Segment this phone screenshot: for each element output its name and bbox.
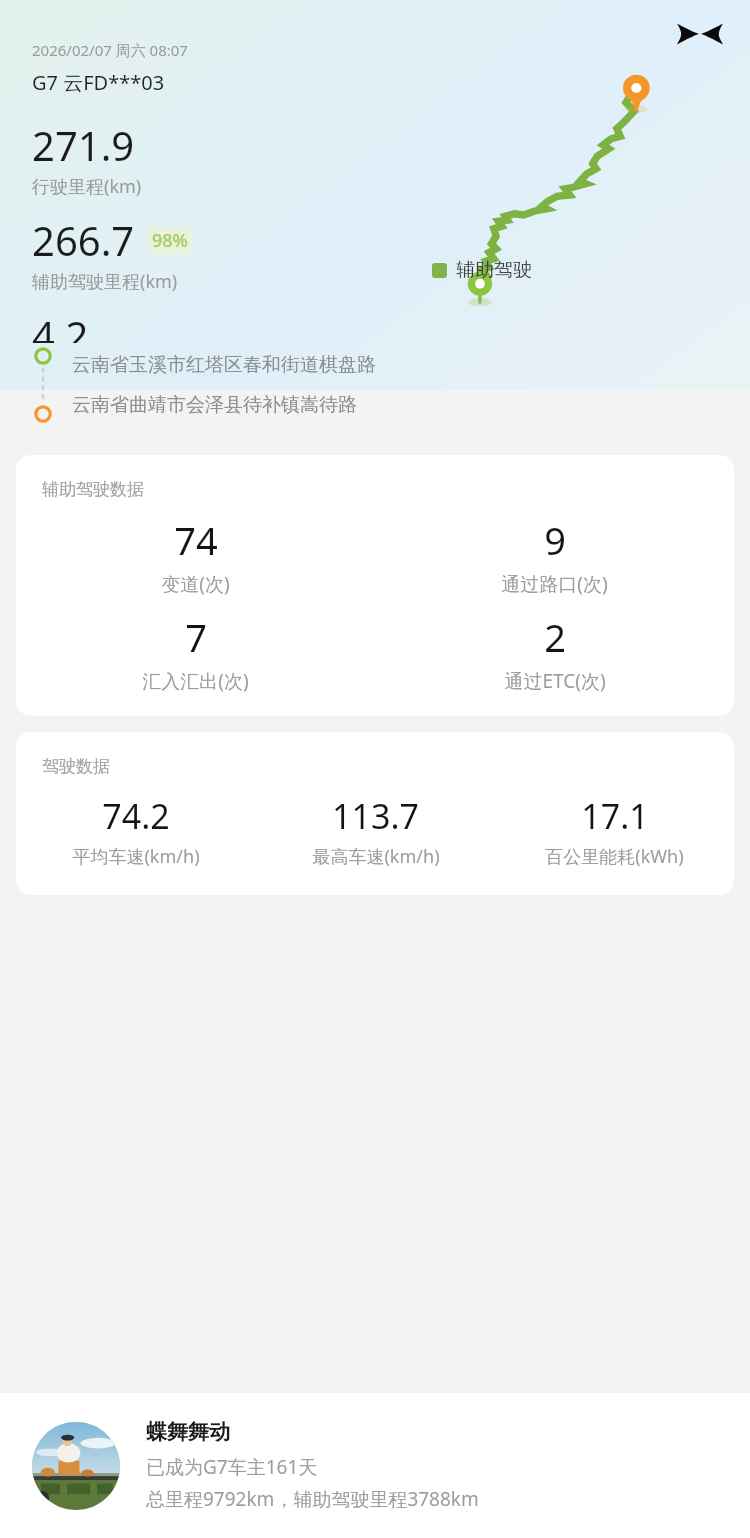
staticText: 74.2 [102, 793, 170, 839]
staticText: 271.9 [32, 118, 135, 172]
button[interactable]: Brand logo [672, 6, 728, 62]
staticText: 总里程9792km，辅助驾驶里程3788km [146, 1486, 479, 1512]
staticText: 云南省玉溪市红塔区春和街道棋盘路 [72, 353, 376, 377]
staticText: 113.7 [332, 793, 419, 839]
staticText: 17.1 [581, 793, 649, 839]
staticText: 98% [152, 228, 188, 253]
staticText: 7 [185, 611, 207, 663]
staticText: 266.7 [32, 213, 135, 267]
staticText: 辅助驾驶数据 [42, 479, 144, 500]
staticText: G7 云FD***03 [32, 69, 165, 96]
staticText: 辅助驾驶里程(km) [32, 269, 178, 294]
staticText: 9 [544, 514, 566, 566]
staticText: 平均车速(km/h) [72, 844, 200, 869]
staticText: 通过路口(次) [501, 571, 608, 597]
staticText: 辅助驾驶 [456, 258, 532, 282]
staticText: 2 [544, 611, 566, 663]
staticText: 通过ETC(次) [504, 668, 606, 694]
staticText: 蝶舞舞动 [146, 1419, 230, 1445]
staticText: 行驶里程(km) [32, 174, 142, 199]
staticText: 汇入汇出(次) [142, 668, 249, 694]
staticText: 百公里能耗(kWh) [545, 844, 684, 869]
button[interactable]: 辅助驾驶数据 [16, 455, 734, 716]
button[interactable]: 蝶舞舞动 [0, 1393, 750, 1538]
button[interactable]: 驾驶数据 [16, 732, 734, 895]
staticText: 变道(次) [161, 571, 230, 597]
staticText: 最高车速(km/h) [312, 844, 440, 869]
staticText: 74 [174, 514, 218, 566]
staticText: 驾驶数据 [42, 756, 110, 777]
staticText: 2026/02/07 周六 08:07 [32, 40, 188, 60]
staticText: 已成为G7车主161天 [146, 1454, 318, 1480]
staticText: 云南省曲靖市会泽县待补镇嵩待路 [72, 393, 357, 417]
staticText: 4.2 [32, 308, 89, 343]
